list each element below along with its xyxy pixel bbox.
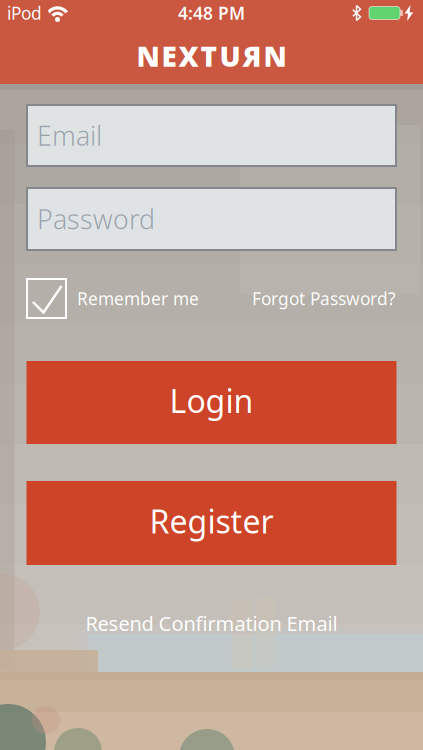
secureTextField[interactable]: Password bbox=[37, 201, 396, 237]
button[interactable]: Resend Confirmation Email bbox=[85, 610, 337, 637]
textField[interactable]: Email bbox=[37, 118, 396, 153]
button[interactable]: Forgot Password? bbox=[252, 287, 396, 310]
staticText: Forgot Password? bbox=[252, 287, 396, 310]
staticText: iPod bbox=[7, 1, 42, 24]
staticText: Email bbox=[37, 118, 102, 153]
staticText: NEXTUЯN bbox=[136, 37, 286, 75]
staticText: Login bbox=[169, 379, 253, 422]
staticText: 4:48 PM bbox=[178, 1, 245, 24]
staticText: Resend Confirmation Email bbox=[85, 610, 337, 637]
staticText: Password bbox=[37, 201, 155, 237]
button[interactable]: Remember me bbox=[27, 279, 199, 318]
button[interactable]: Register bbox=[26, 481, 396, 565]
staticText: Email bbox=[37, 118, 102, 153]
staticText: Password bbox=[37, 201, 155, 237]
staticText: Remember me bbox=[77, 287, 199, 310]
staticText: Register bbox=[149, 500, 273, 542]
button[interactable]: Login bbox=[26, 361, 396, 444]
